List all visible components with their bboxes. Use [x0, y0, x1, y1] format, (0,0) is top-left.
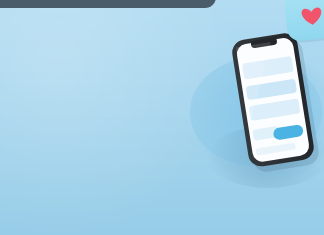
- button[interactable]: Mobile app illustration: [0, 0, 324, 235]
